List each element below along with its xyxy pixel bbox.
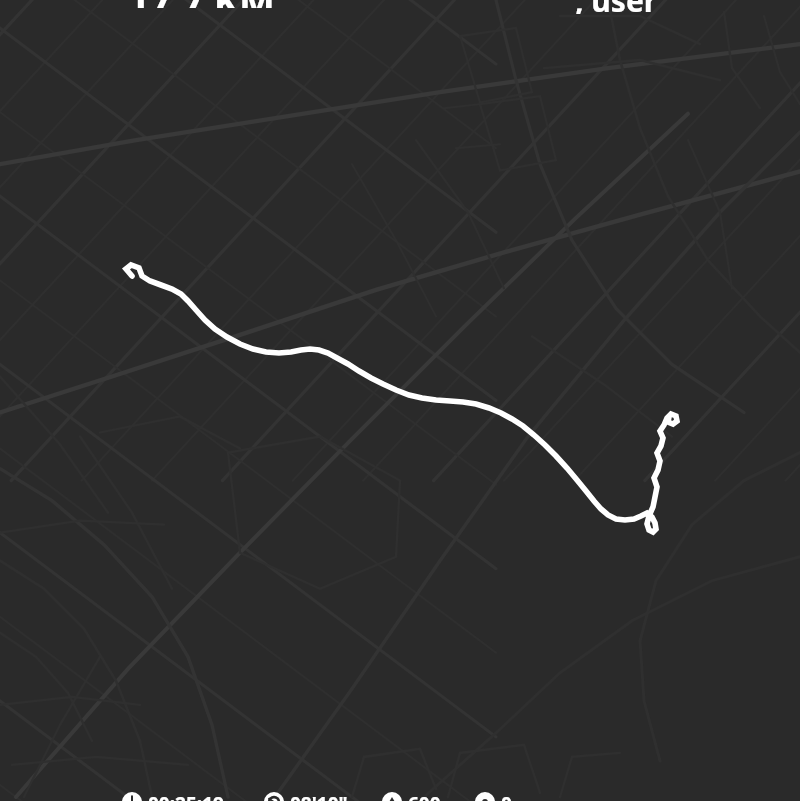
button[interactable]: Pace 8 minutes 10 seconds per kilometre (264, 791, 348, 801)
staticText: 0 (501, 791, 512, 801)
staticText: , user (575, 0, 658, 14)
button[interactable]: Elevation 600 (382, 791, 441, 801)
staticText: 600 (408, 791, 441, 801)
staticText: 00:25:19 (148, 791, 224, 801)
button[interactable]: Zero (475, 791, 512, 801)
button[interactable]: Duration 00:25:19 (122, 791, 224, 801)
staticText: 08'10" (290, 791, 348, 801)
staticText: 17.7 KM (128, 0, 275, 8)
